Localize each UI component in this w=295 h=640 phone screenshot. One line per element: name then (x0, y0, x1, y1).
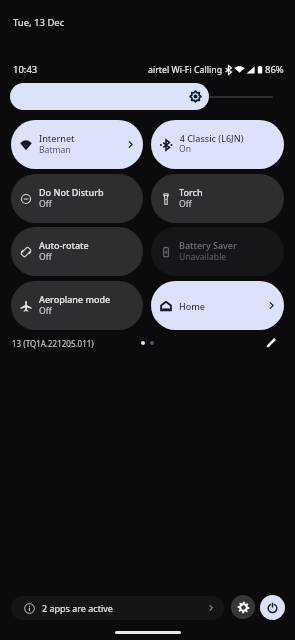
button[interactable]: Torch (151, 174, 284, 223)
staticText: Off (39, 305, 52, 317)
button[interactable]: Settings (231, 595, 255, 619)
staticText: n4 Classic (L6JN) (179, 132, 244, 143)
staticText: On (179, 143, 192, 155)
button[interactable]: Do Not Disturb (11, 174, 143, 223)
button[interactable]: Home (151, 281, 284, 330)
staticText: Off (39, 198, 52, 210)
staticText: 86% (265, 63, 284, 76)
staticText: 10:43 (13, 63, 38, 76)
staticText: airtel Wi-Fi Calling (148, 64, 223, 76)
staticText: 2 apps are active (42, 602, 113, 614)
staticText: Battery Saver (179, 239, 237, 251)
button[interactable]: Power (260, 595, 285, 620)
button[interactable]: Brightness (10, 83, 284, 110)
button[interactable]: n4 Classic (L6JN) (151, 120, 284, 169)
staticText: Auto-rotate (39, 239, 89, 251)
staticText: Tue, 13 Dec (13, 16, 65, 29)
staticText: Off (39, 251, 52, 263)
button[interactable]: Edit tiles (259, 331, 283, 355)
staticText: Aeroplane mode (39, 293, 111, 305)
staticText: Do Not Disturb (39, 186, 104, 198)
button[interactable]: Auto-rotate (11, 227, 143, 276)
staticText: Unavailable (179, 251, 227, 263)
button[interactable]: Aeroplane mode (11, 281, 143, 330)
button[interactable]: 2 apps are active (11, 596, 224, 620)
staticText: 13 (TQ1A.221205.011) (12, 338, 94, 349)
staticText: Internet (39, 132, 75, 144)
staticText: Home (179, 300, 205, 312)
staticText: Off (179, 198, 192, 210)
button[interactable]: Internet (11, 120, 143, 169)
staticText: Torch (179, 186, 203, 198)
button[interactable]: Battery Saver (151, 227, 284, 276)
staticText: Batman (39, 144, 71, 156)
